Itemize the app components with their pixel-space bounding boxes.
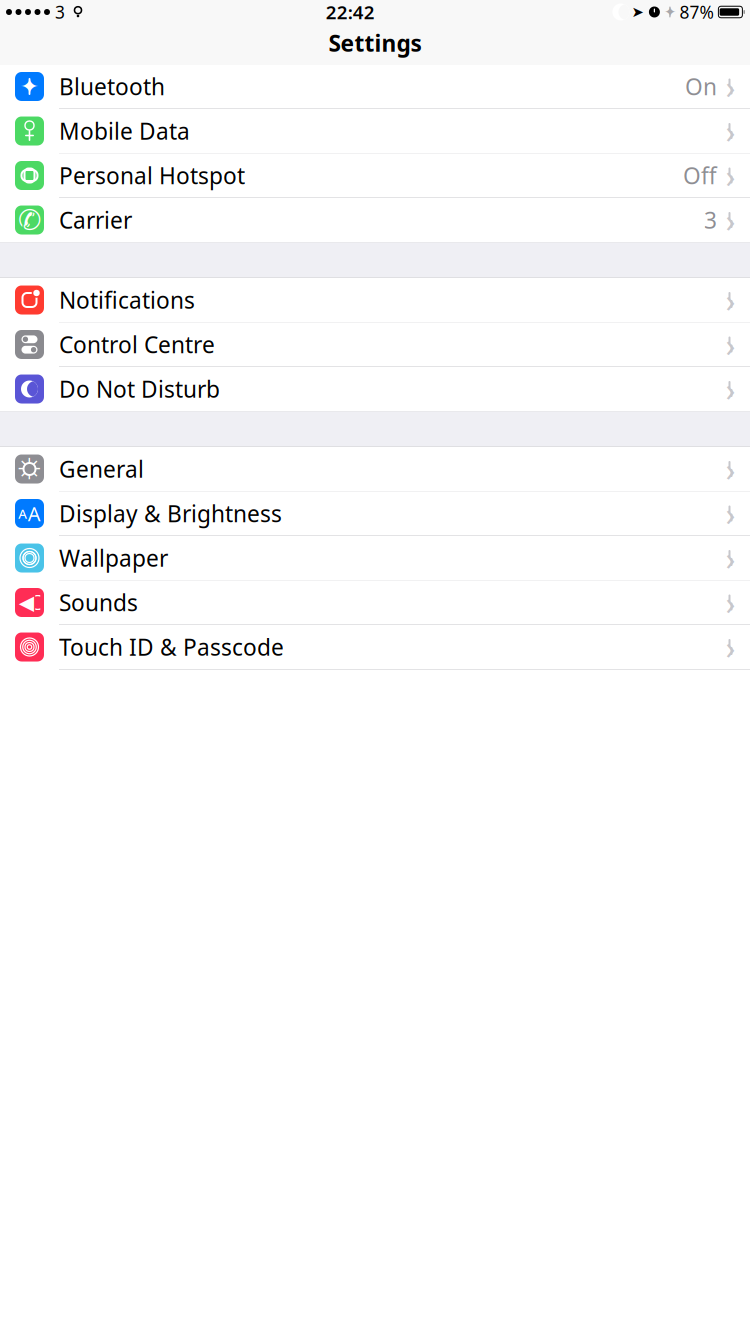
staticText: › bbox=[725, 154, 735, 197]
staticText: ✆ bbox=[18, 204, 41, 236]
staticText: Personal Hotspot bbox=[59, 160, 245, 190]
button[interactable]: ✳ bbox=[0, 447, 750, 491]
staticText: Carrier bbox=[59, 205, 132, 235]
button[interactable]: Do Not Disturb bbox=[0, 367, 750, 411]
staticText: ➤ bbox=[631, 4, 643, 20]
staticText: › bbox=[725, 448, 735, 490]
staticText: › bbox=[725, 199, 735, 241]
button[interactable]: Notifications bbox=[0, 278, 750, 322]
staticText: Touch ID & Passcode bbox=[59, 632, 284, 662]
staticText: › bbox=[725, 581, 735, 624]
staticText: 3 bbox=[704, 205, 717, 235]
staticText: Off bbox=[683, 160, 717, 190]
staticText: › bbox=[725, 626, 735, 668]
button[interactable]: ✆ bbox=[0, 198, 750, 242]
staticText: General bbox=[59, 454, 144, 484]
staticText: 87% bbox=[679, 0, 713, 23]
staticText: Display & Brightness bbox=[59, 498, 282, 528]
button[interactable]: Wallpaper bbox=[0, 536, 750, 580]
staticText: ✳ bbox=[17, 452, 42, 486]
staticText: Do Not Disturb bbox=[59, 374, 220, 404]
staticText: › bbox=[725, 110, 735, 152]
button[interactable]: ◀ bbox=[0, 580, 750, 624]
staticText: ◀ bbox=[19, 591, 34, 614]
staticText: Sounds bbox=[59, 587, 138, 617]
staticText: Wallpaper bbox=[59, 543, 168, 573]
staticText: Control Centre bbox=[59, 329, 215, 359]
staticText: A bbox=[18, 505, 27, 522]
staticText: Notifications bbox=[59, 285, 195, 315]
staticText: › bbox=[725, 279, 735, 321]
staticText: 3 bbox=[55, 0, 65, 23]
button[interactable]: A bbox=[0, 491, 750, 535]
staticText: A bbox=[28, 500, 41, 527]
staticText: › bbox=[725, 537, 735, 579]
staticText: ✦ bbox=[664, 4, 676, 20]
staticText: › bbox=[725, 368, 735, 410]
button[interactable]: Control Centre bbox=[0, 322, 750, 366]
staticText: Settings bbox=[328, 28, 421, 58]
staticText: Bluetooth bbox=[59, 71, 165, 101]
button[interactable]: Touch ID & Passcode bbox=[0, 625, 750, 669]
staticText: On bbox=[685, 71, 717, 101]
staticText: Mobile Data bbox=[59, 116, 190, 146]
staticText: ✦ bbox=[20, 74, 39, 99]
staticText: 22:42 bbox=[326, 0, 375, 24]
staticText: › bbox=[725, 492, 735, 535]
staticText: › bbox=[725, 323, 735, 366]
staticText: › bbox=[725, 65, 735, 108]
button[interactable]: Mobile Data bbox=[0, 109, 750, 153]
button[interactable]: ✦ bbox=[0, 64, 750, 108]
button[interactable]: Personal Hotspot bbox=[0, 153, 750, 197]
